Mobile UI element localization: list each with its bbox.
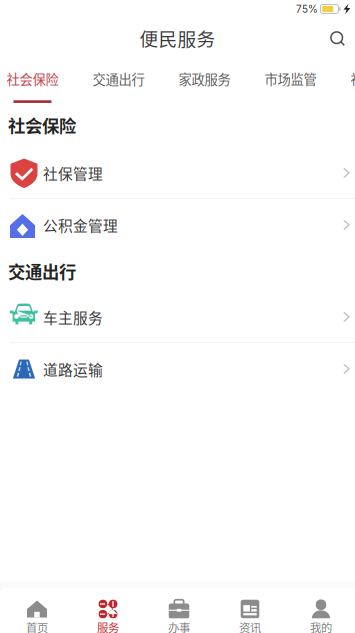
button[interactable]: 市场监管	[265, 58, 316, 103]
staticText: 道路运输	[43, 358, 103, 380]
staticText: 服务	[97, 619, 119, 633]
button[interactable]: 我的	[285, 590, 355, 633]
button[interactable]: 道路运输	[0, 343, 355, 395]
staticText: 社会保险	[6, 69, 58, 88]
staticText: 首页	[26, 619, 48, 633]
button[interactable]: 社保管理	[0, 147, 355, 199]
button[interactable]: 车主服务	[0, 291, 355, 343]
staticText: 资讯	[239, 619, 261, 633]
staticText: 公积金管理	[43, 214, 118, 236]
button[interactable]: 资讯	[214, 590, 285, 633]
staticText: 我的	[310, 619, 332, 633]
button[interactable]: 服务	[72, 590, 143, 633]
staticText: 车主服务	[43, 306, 103, 328]
staticText: 便民服务	[139, 24, 215, 51]
staticText: 交通出行	[92, 69, 144, 88]
staticText: 社会保险	[8, 112, 76, 138]
staticText: 家政服务	[178, 69, 230, 88]
button[interactable]: 办事	[143, 590, 214, 633]
button[interactable]: 公积金管理	[0, 199, 355, 251]
staticText: 社保管理	[43, 162, 103, 184]
staticText: 办事	[168, 619, 190, 633]
staticText: 市场监管	[264, 69, 316, 88]
staticText: 交通出行	[8, 258, 76, 284]
button[interactable]: 社会保险	[7, 58, 58, 103]
button[interactable]: 搜索	[322, 22, 354, 54]
staticText: 社会救助	[350, 69, 355, 88]
button[interactable]: 家政服务	[179, 58, 230, 103]
button[interactable]: 交通出行	[93, 58, 144, 103]
staticText: 75%	[296, 3, 318, 15]
button[interactable]: 社会救助	[351, 58, 355, 103]
button[interactable]: 首页	[1, 590, 72, 633]
